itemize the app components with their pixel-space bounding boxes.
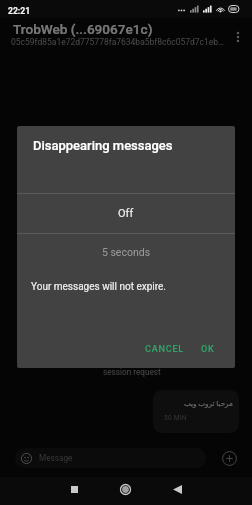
button[interactable]: Home: [113, 477, 137, 502]
staticText: OK: [201, 343, 215, 354]
staticText: Off: [118, 207, 134, 220]
staticText: 5 seconds: [17, 246, 235, 258]
button[interactable]: Attach: [221, 450, 238, 467]
staticText: مرحبا تروب ويب: [184, 399, 233, 407]
staticText: 50 MIN: [164, 414, 187, 422]
staticText: CANCEL: [145, 343, 184, 354]
staticText: Disappearing messages: [33, 138, 173, 153]
button[interactable]: CANCEL: [137, 339, 192, 358]
staticText: Message: [39, 453, 73, 463]
button[interactable]: Message: [15, 448, 206, 468]
staticText: TrobWeb (...69067e1c): [13, 21, 153, 37]
button[interactable]: More options: [226, 18, 250, 56]
button[interactable]: OK: [193, 339, 223, 358]
button[interactable]: Back: [165, 477, 189, 502]
staticText: 22:21: [8, 6, 31, 16]
button[interactable]: مرحبا تروب ويب: [153, 390, 239, 433]
staticText: Your messages will not expire.: [31, 281, 166, 293]
button[interactable]: Recent apps: [62, 477, 86, 502]
staticText: session request: [103, 367, 161, 377]
button[interactable]: Off: [17, 194, 235, 233]
staticText: 05c59fd85a1e72d775778fa7634ba5bf8c6c057d…: [11, 37, 224, 47]
